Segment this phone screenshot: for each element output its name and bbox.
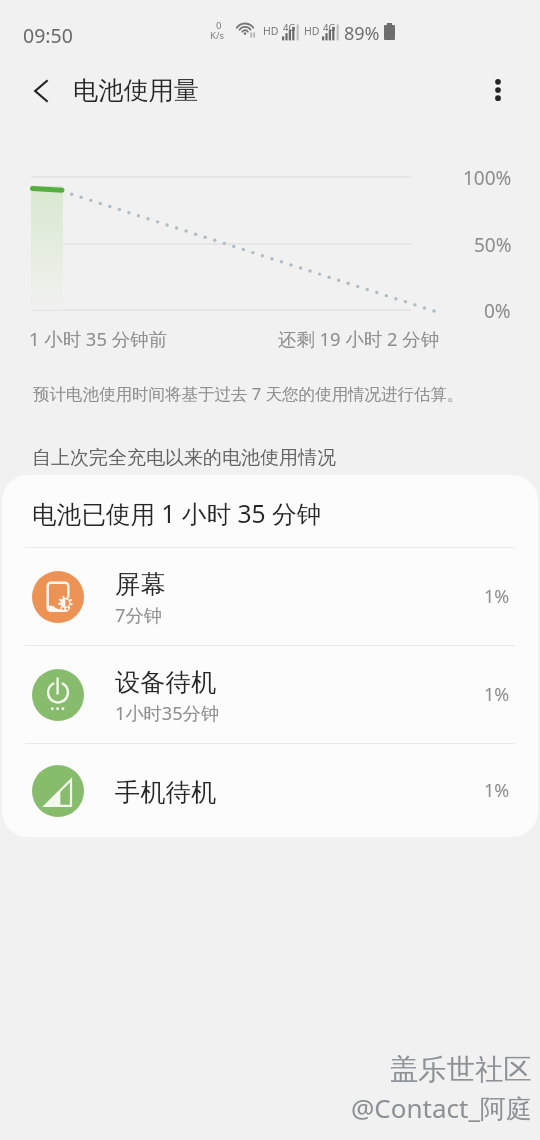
staticText: 1小时35分钟	[115, 701, 219, 726]
staticText: 电池使用量	[73, 75, 199, 107]
staticText: HD	[304, 24, 320, 38]
staticText: 手机待机	[115, 777, 217, 809]
staticText: K/s	[210, 29, 224, 42]
button[interactable]: 屏幕	[2, 548, 538, 645]
staticText: 50%	[474, 232, 512, 258]
button[interactable]: 设备待机	[2, 646, 538, 743]
staticText: 1%	[484, 682, 510, 707]
staticText: 7分钟	[115, 603, 162, 628]
staticText: 还剩 19 小时 2 分钟	[278, 326, 440, 351]
staticText: 预计电池使用时间将基于过去 7 天您的使用情况进行估算。	[33, 382, 464, 405]
staticText: 0	[216, 19, 222, 32]
staticText: 0%	[484, 298, 511, 324]
staticText: @Contact_阿庭	[351, 1090, 532, 1126]
staticText: 设备待机	[115, 667, 217, 699]
staticText: 4G	[283, 21, 296, 34]
staticText: 09:50	[23, 22, 73, 49]
staticText: 89%	[344, 21, 380, 46]
button[interactable]: 手机待机	[2, 744, 538, 837]
staticText: 屏幕	[115, 569, 166, 601]
button[interactable]: More options	[476, 68, 520, 112]
staticText: 1 小时 35 分钟前	[29, 326, 167, 351]
staticText: 100%	[463, 165, 512, 191]
staticText: 1%	[484, 584, 510, 609]
staticText: HD	[263, 24, 279, 38]
staticText: 盖乐世社区	[390, 1052, 532, 1088]
staticText: 1%	[484, 778, 510, 803]
staticText: 自上次完全充电以来的电池使用情况	[32, 446, 336, 470]
button[interactable]: Back	[17, 67, 65, 115]
staticText: 电池已使用 1 小时 35 分钟	[32, 497, 322, 531]
staticText: 4G	[323, 21, 336, 34]
